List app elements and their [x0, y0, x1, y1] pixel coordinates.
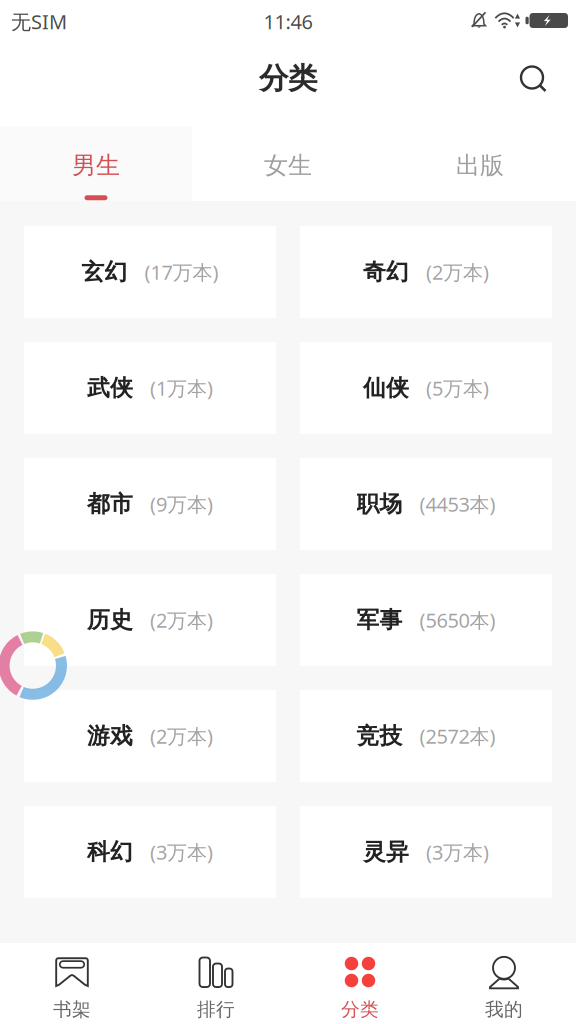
button[interactable]: 职场 — [300, 458, 552, 550]
staticText: 11:46 — [263, 8, 312, 35]
button[interactable]: 游戏 — [24, 690, 276, 782]
button[interactable]: 分类 — [288, 943, 432, 1024]
button[interactable]: 奇幻 — [300, 226, 552, 318]
button[interactable]: 出版 — [384, 126, 576, 201]
staticText: 我的 — [485, 998, 523, 1021]
button[interactable]: 玄幻 — [24, 226, 276, 318]
staticText: (1万本) — [150, 375, 213, 401]
button[interactable]: 都市 — [24, 458, 276, 550]
staticText: 男生 — [72, 151, 120, 180]
staticText: 出版 — [456, 151, 504, 180]
staticText: (2572本) — [419, 723, 495, 749]
staticText: (3万本) — [426, 839, 489, 865]
staticText: 职场 — [356, 490, 402, 518]
button[interactable]: 男生 — [0, 126, 192, 201]
button[interactable]: 军事 — [300, 574, 552, 666]
staticText: (2万本) — [426, 259, 489, 285]
button[interactable]: 武侠 — [24, 342, 276, 434]
staticText: 武侠 — [87, 374, 133, 402]
button[interactable]: 历史 — [24, 574, 276, 666]
staticText: (17万本) — [144, 259, 218, 285]
staticText: 游戏 — [87, 722, 133, 750]
staticText: 玄幻 — [81, 258, 127, 286]
staticText: (5万本) — [426, 375, 489, 401]
staticText: 无SIM — [11, 8, 67, 35]
staticText: 排行 — [197, 998, 235, 1021]
button[interactable]: 我的 — [432, 943, 576, 1024]
button[interactable]: 科幻 — [24, 806, 276, 898]
staticText: 分类 — [341, 998, 379, 1021]
staticText: (2万本) — [150, 723, 213, 749]
staticText: 书架 — [53, 998, 91, 1021]
button[interactable]: 排行 — [144, 943, 288, 1024]
button[interactable]: 灵异 — [300, 806, 552, 898]
staticText: 仙侠 — [363, 374, 409, 402]
button[interactable]: 搜索 — [505, 50, 563, 108]
staticText: (3万本) — [150, 839, 213, 865]
button[interactable]: 书架 — [0, 943, 144, 1024]
button[interactable]: 竞技 — [300, 690, 552, 782]
staticText: 都市 — [87, 490, 133, 518]
staticText: 军事 — [356, 606, 402, 634]
staticText: (5650本) — [419, 607, 495, 633]
staticText: 历史 — [87, 606, 133, 634]
staticText: 科幻 — [87, 838, 133, 866]
staticText: 灵异 — [363, 838, 409, 866]
staticText: 竞技 — [356, 722, 402, 750]
button[interactable]: 仙侠 — [300, 342, 552, 434]
staticText: 分类 — [259, 60, 317, 96]
staticText: 奇幻 — [363, 258, 409, 286]
staticText: 女生 — [264, 151, 312, 180]
staticText: (4453本) — [419, 491, 495, 517]
staticText: (9万本) — [150, 491, 213, 517]
button[interactable]: 女生 — [192, 126, 384, 201]
staticText: (2万本) — [150, 607, 213, 633]
